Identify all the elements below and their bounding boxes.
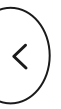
button[interactable]: Back <box>0 0 61 109</box>
